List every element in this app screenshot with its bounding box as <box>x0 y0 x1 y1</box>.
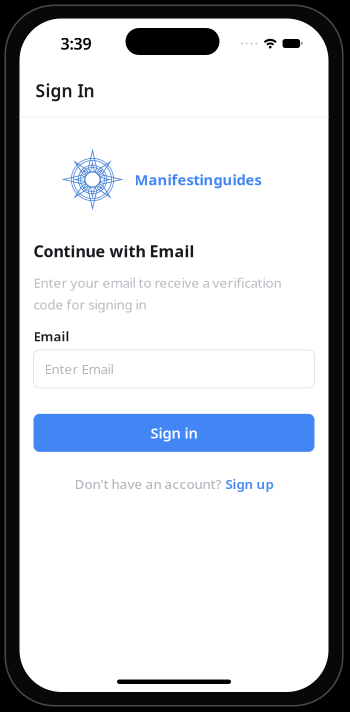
staticText: Continue with Email <box>33 240 194 262</box>
staticText: Enter your email to receive a verificati… <box>33 274 281 291</box>
staticText: Sign in <box>150 423 197 443</box>
button[interactable]: Don't have an account? <box>33 474 314 494</box>
staticText: Email <box>33 327 69 345</box>
button[interactable]: Sign in <box>33 414 314 452</box>
button[interactable]: Enter Email <box>33 350 314 388</box>
staticText: Sign In <box>35 79 94 102</box>
staticText: Sign up <box>225 475 273 493</box>
staticText: code for signing in <box>33 295 146 313</box>
staticText: 3:39 <box>60 33 91 54</box>
staticText: Don't have an account? <box>74 475 221 493</box>
staticText: Manifestinguides <box>134 170 261 189</box>
staticText: Enter Email <box>44 360 113 378</box>
